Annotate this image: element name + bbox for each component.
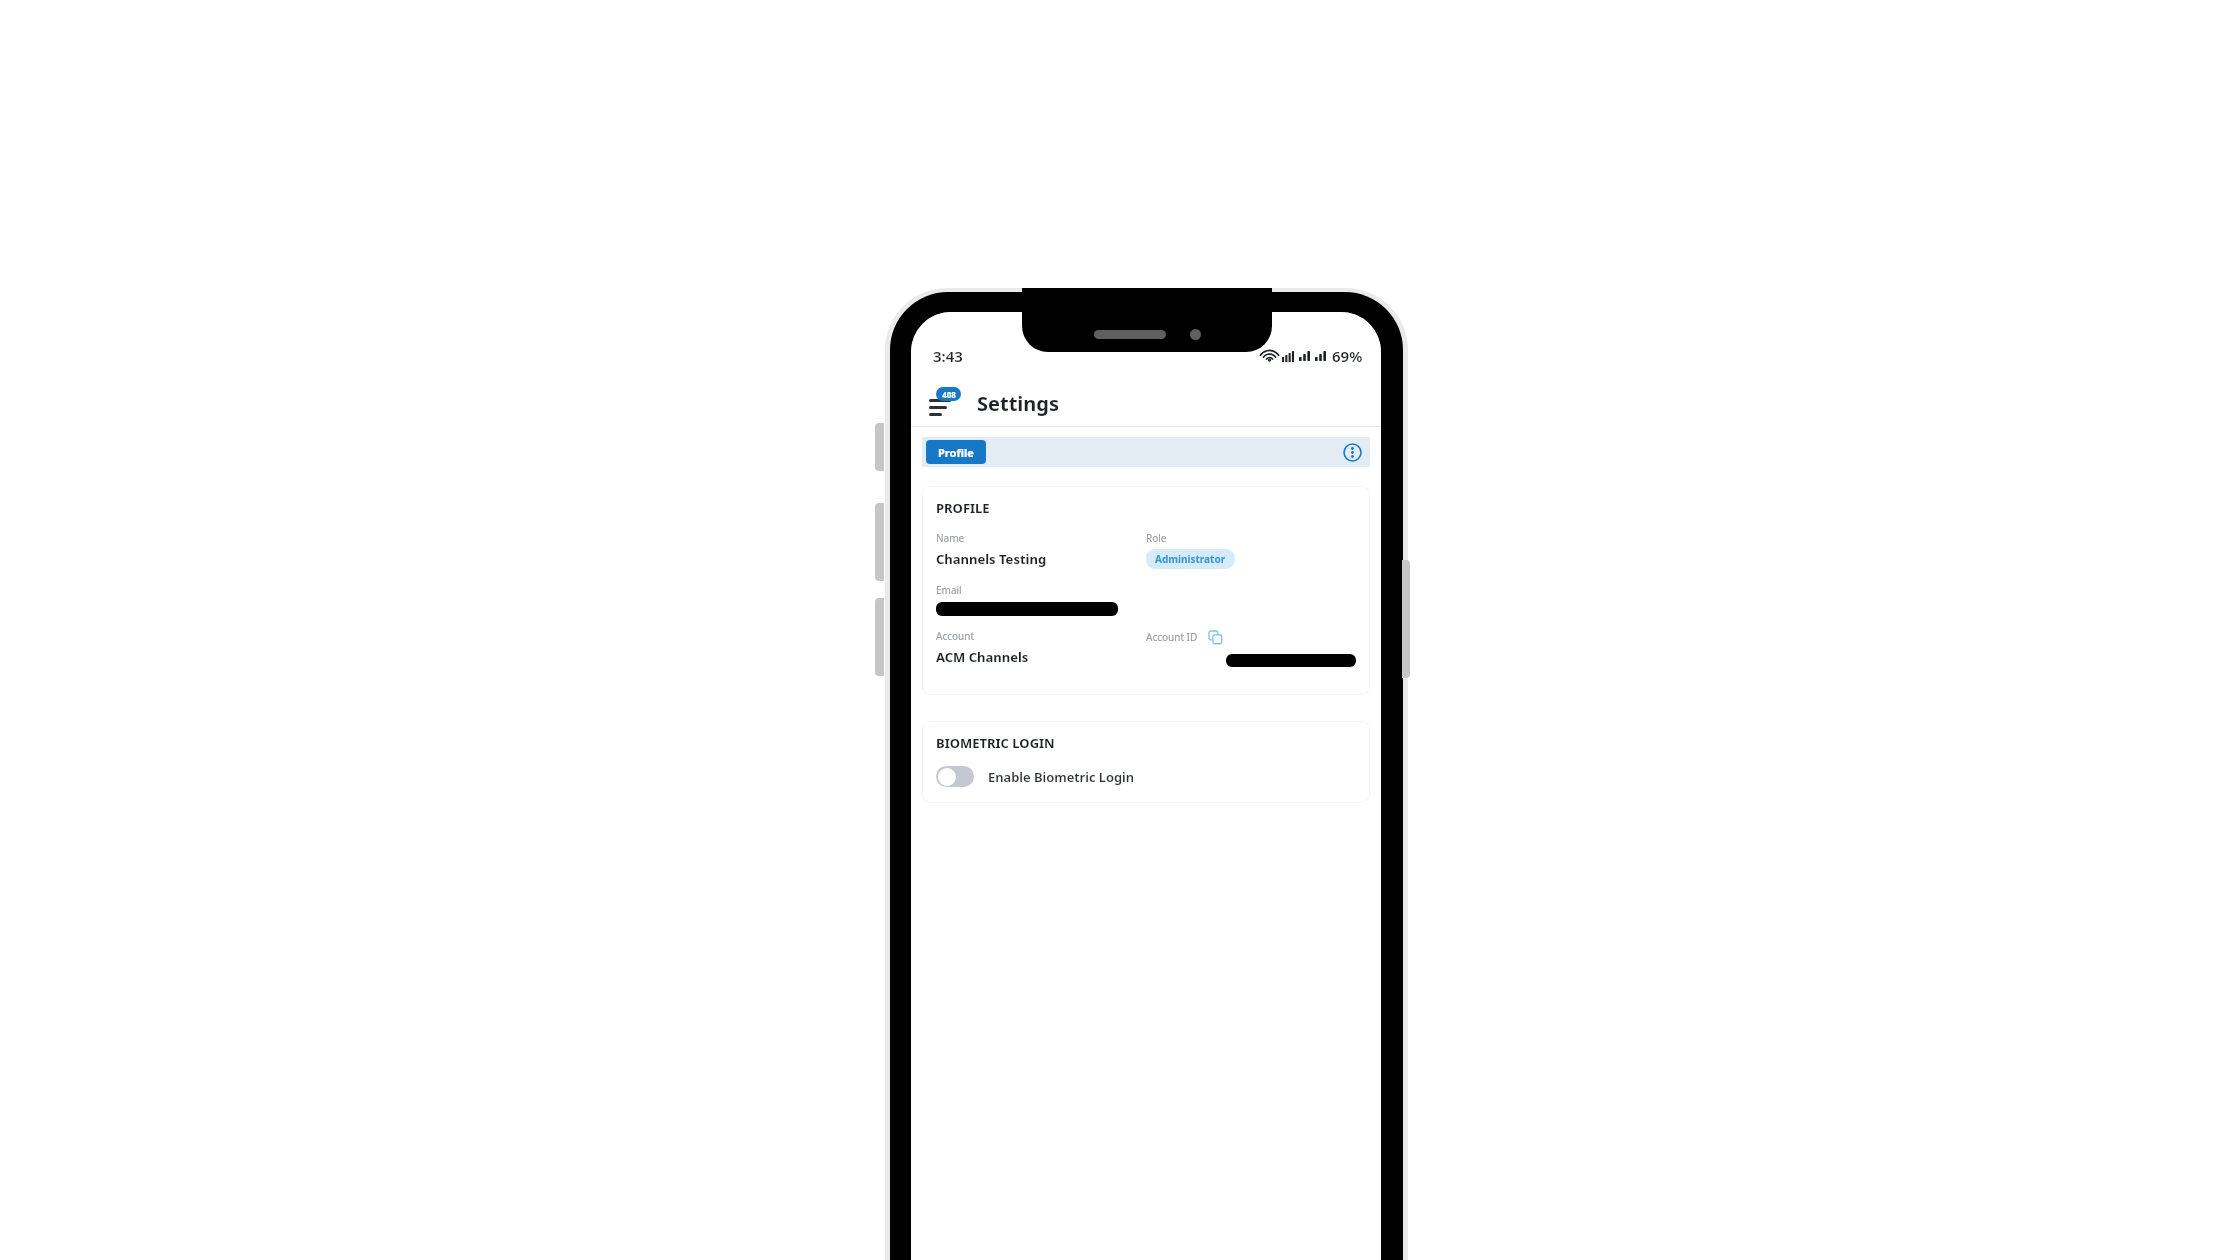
staticText: Settings — [977, 390, 1059, 417]
staticText: Account ID — [1146, 630, 1198, 644]
staticText: ACM Channels — [936, 648, 1029, 666]
staticText: Administrator — [1155, 552, 1226, 566]
button[interactable]: Open navigation menu, 408 notifications — [929, 386, 969, 420]
staticText: BIOMETRIC LOGIN — [936, 734, 1055, 752]
staticText: Enable Biometric Login — [988, 768, 1135, 786]
button[interactable]: PROFILE — [922, 486, 1370, 695]
staticText: 408 — [942, 389, 956, 400]
button[interactable]: BIOMETRIC LOGIN — [922, 721, 1370, 803]
staticText: Email — [936, 583, 962, 597]
staticText: Channels Testing — [936, 550, 1047, 568]
button[interactable]: More options — [1340, 440, 1364, 464]
staticText: Role — [1146, 531, 1167, 545]
staticText: Account — [936, 629, 975, 643]
staticText: Profile — [938, 445, 974, 460]
staticText: 3:43 — [933, 346, 963, 366]
button[interactable]: Enable biometric login toggle, off — [936, 766, 1356, 787]
button[interactable]: Copy account ID — [1207, 629, 1223, 645]
button[interactable]: Profile — [926, 440, 986, 464]
staticText: Name — [936, 531, 965, 545]
staticText: PROFILE — [936, 499, 990, 517]
button[interactable]: Administrator — [1146, 549, 1235, 569]
other: Enable biometric login toggle, off — [936, 766, 974, 787]
staticText: 69% — [1332, 346, 1363, 366]
